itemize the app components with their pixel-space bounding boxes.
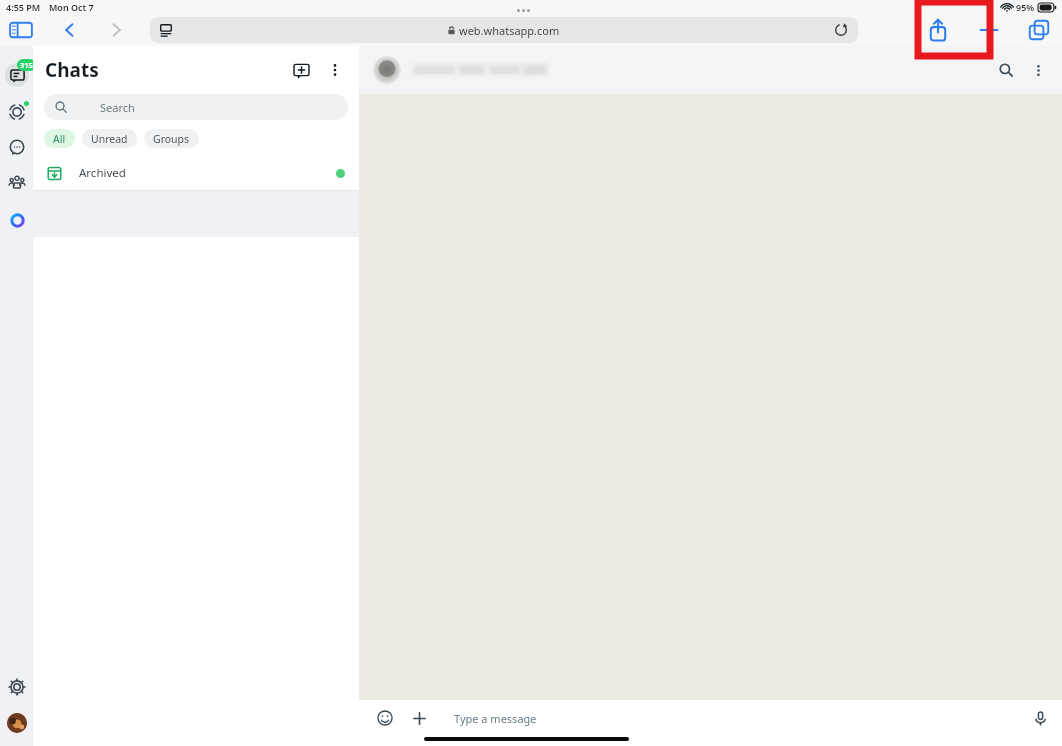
button[interactable]: Sidebar [4, 14, 38, 46]
button[interactable]: Attach [407, 706, 431, 730]
button[interactable]: Profile [4, 710, 30, 736]
button[interactable]: Voice message [1028, 706, 1052, 730]
button[interactable]: Search [44, 94, 348, 120]
button[interactable]: Meta AI [4, 207, 30, 233]
button[interactable]: Search [992, 56, 1020, 84]
staticText: web.whatsapp.com [459, 23, 560, 38]
button[interactable]: Unread [82, 129, 137, 148]
staticText: Unread [91, 132, 128, 146]
staticText: 4:55 PM [6, 1, 41, 13]
button[interactable]: Groups [144, 129, 199, 148]
button[interactable]: Tabs [1024, 15, 1054, 45]
staticText: Search [100, 100, 135, 115]
staticText: Chats [45, 57, 99, 83]
staticText: 315 [20, 60, 33, 70]
button[interactable]: Menu [1024, 56, 1052, 84]
staticText: Type a message [454, 711, 537, 726]
staticText: Archived [79, 165, 126, 181]
button[interactable]: Menu [321, 56, 349, 84]
staticText: Mon Oct 7 [49, 1, 94, 13]
button[interactable]: Type a message [443, 706, 1018, 730]
button[interactable]: Settings [4, 674, 30, 700]
button[interactable]: Archived [33, 156, 359, 190]
button[interactable]: Back [54, 15, 84, 45]
button[interactable]: Status [4, 99, 30, 125]
button[interactable]: All [44, 129, 75, 148]
button[interactable]: Search [359, 46, 1062, 94]
staticText: All [53, 132, 66, 146]
button[interactable]: New chat [287, 56, 315, 84]
button[interactable]: web.whatsapp.com [150, 17, 858, 43]
button[interactable]: Emoji [373, 706, 397, 730]
button[interactable]: Chats [2, 60, 32, 90]
button[interactable]: New Tab [974, 15, 1004, 45]
button[interactable]: Communities [4, 169, 30, 195]
staticText: Groups [153, 132, 190, 146]
button[interactable]: Share [922, 14, 954, 46]
button[interactable]: Forward [102, 15, 132, 45]
staticText: 95% [1016, 1, 1035, 13]
button[interactable]: Channels [4, 134, 30, 160]
